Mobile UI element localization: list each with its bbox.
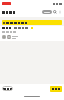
button[interactable]: Search bbox=[53, 10, 57, 14]
button[interactable] bbox=[2, 20, 62, 25]
button[interactable]: Document bbox=[7, 35, 11, 39]
button[interactable] bbox=[50, 86, 62, 92]
button[interactable]: Attachment bbox=[2, 35, 6, 39]
button[interactable]: More options bbox=[58, 10, 62, 14]
button[interactable] bbox=[2, 86, 13, 91]
button[interactable] bbox=[42, 10, 52, 14]
